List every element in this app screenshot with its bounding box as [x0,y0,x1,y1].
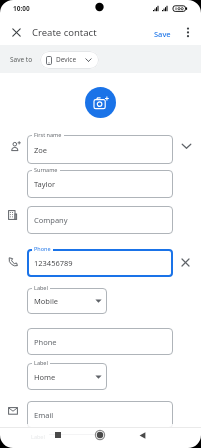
button[interactable] [128,424,156,446]
staticText: Label [34,284,48,291]
button[interactable] [181,258,190,267]
staticText: Home [34,372,56,382]
staticText: Taylor [34,179,56,189]
button[interactable]: Company [27,206,173,234]
staticText: Label [34,359,48,366]
staticText: 10:00 [13,4,30,13]
button[interactable]: Zoe [27,135,173,164]
button[interactable] [85,87,116,118]
staticText: Email [34,410,54,420]
button[interactable]: Home [27,363,107,390]
button[interactable]: Taylor [27,170,173,198]
button[interactable] [184,27,192,38]
staticText: Phone [34,337,57,347]
staticText: Mobile [34,296,59,306]
button[interactable]: Phone [27,328,173,355]
button[interactable] [12,28,21,37]
button[interactable] [44,424,72,446]
staticText: First name [34,131,62,138]
button[interactable]: Device [40,51,99,69]
staticText: Phone [34,245,51,252]
button[interactable]: 123456789 [27,249,173,277]
staticText: Save [154,29,171,39]
button[interactable]: Save [150,25,175,43]
staticText: Create contact [32,26,97,39]
button[interactable]: Email [27,401,173,428]
button[interactable]: Mobile [27,288,107,314]
button[interactable] [86,424,114,446]
button[interactable] [181,143,192,150]
staticText: Save to [10,55,33,64]
staticText: Surname [34,166,58,173]
staticText: Device [56,55,77,64]
staticText: Label [31,433,45,440]
staticText: 123456789 [34,258,73,268]
staticText: Zoe [34,145,48,155]
staticText: Company [34,215,68,225]
